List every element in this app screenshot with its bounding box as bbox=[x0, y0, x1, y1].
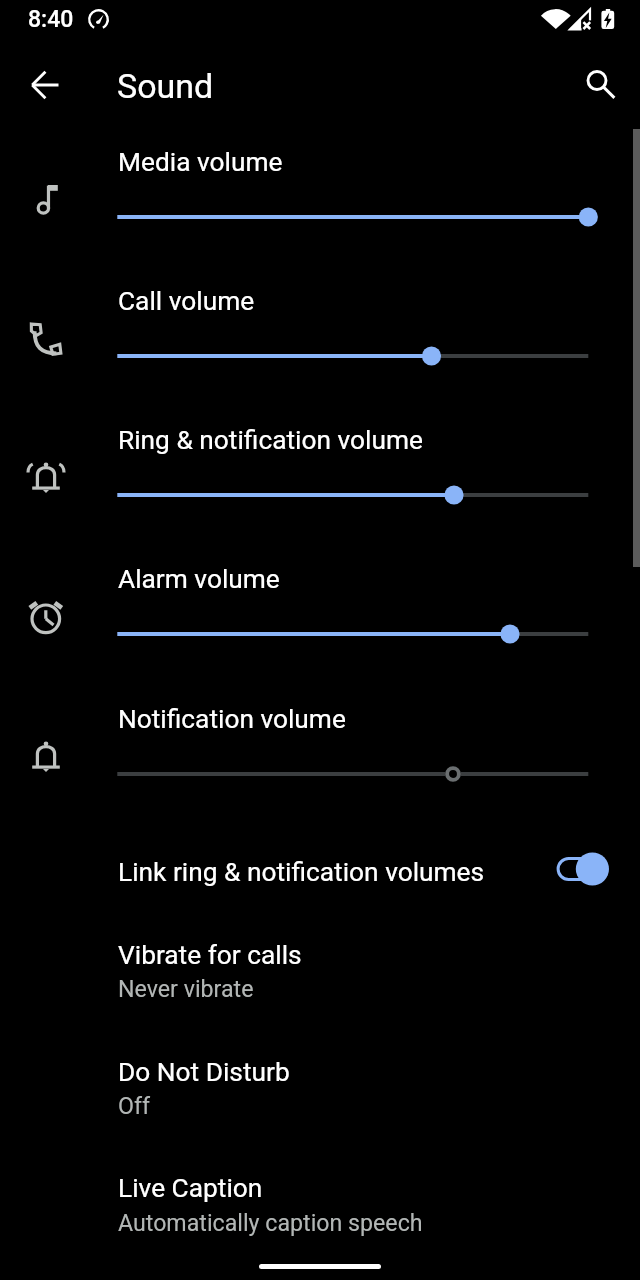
staticText: 8:40 bbox=[28, 6, 74, 33]
staticText: Alarm volume bbox=[118, 564, 280, 595]
staticText: Off bbox=[118, 1092, 151, 1119]
staticText: Do Not Disturb bbox=[118, 1057, 290, 1088]
button[interactable]: Link ring & notification volumes bbox=[0, 840, 640, 923]
button[interactable]: Call volume bbox=[0, 269, 640, 408]
button[interactable]: Media volume bbox=[0, 130, 640, 269]
button[interactable]: Do Not Disturb bbox=[0, 1040, 640, 1156]
staticText: Never vibrate bbox=[118, 975, 254, 1002]
staticText: Live Caption bbox=[118, 1173, 263, 1204]
button[interactable]: Navigate up bbox=[22, 61, 70, 109]
button[interactable]: Search bbox=[576, 60, 624, 108]
staticText: Media volume bbox=[118, 147, 283, 178]
button[interactable]: Notification volume bbox=[0, 687, 640, 826]
staticText: Link ring & notification volumes bbox=[118, 857, 485, 888]
staticText: Automatically caption speech bbox=[118, 1209, 423, 1236]
button[interactable]: Live Caption bbox=[0, 1156, 640, 1272]
staticText: Notification volume bbox=[118, 704, 346, 735]
staticText: Vibrate for calls bbox=[118, 940, 302, 971]
button[interactable]: Alarm volume bbox=[0, 547, 640, 686]
button[interactable]: Vibrate for calls bbox=[0, 923, 640, 1039]
staticText: Sound bbox=[117, 66, 214, 106]
button[interactable]: Ring & notification volume bbox=[0, 408, 640, 547]
staticText: Ring & notification volume bbox=[118, 425, 423, 456]
staticText: Call volume bbox=[118, 286, 255, 317]
